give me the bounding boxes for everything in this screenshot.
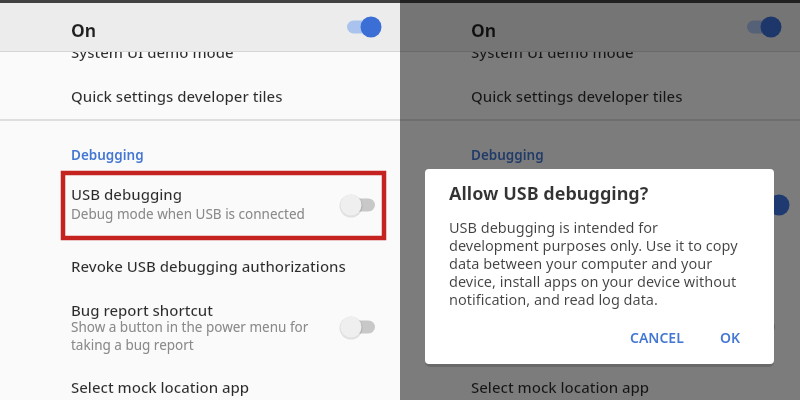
button[interactable]: Select mock location app	[0, 368, 400, 400]
staticText: Revoke USB debugging authorizations	[71, 256, 346, 276]
button[interactable]: Revoke USB debugging authorizations	[0, 246, 400, 286]
staticText: Quick settings developer tiles	[71, 86, 283, 106]
staticText: System UI demo mode	[471, 42, 634, 62]
button[interactable]	[740, 315, 776, 339]
button[interactable]: Bug report shortcut	[400, 290, 800, 360]
button[interactable]	[740, 193, 776, 217]
button[interactable]	[340, 315, 376, 339]
staticText: Show a button in the power menu for taki…	[71, 318, 309, 354]
staticText: Debugging	[471, 146, 544, 164]
button[interactable]: USB debugging	[400, 168, 800, 242]
button[interactable]: OK	[713, 324, 753, 350]
button[interactable]	[340, 193, 376, 217]
staticText: CANCEL	[630, 328, 684, 347]
staticText: Bug report shortcut	[71, 300, 213, 320]
button[interactable]: Select mock location app	[400, 368, 800, 400]
staticText: Quick settings developer tiles	[471, 86, 683, 106]
staticText: USB debugging	[471, 184, 583, 204]
staticText: Debug mode when USB is connected	[71, 205, 305, 223]
staticText: On	[71, 18, 97, 42]
staticText: USB debugging	[71, 184, 183, 204]
staticText: OK	[720, 328, 741, 347]
button[interactable]	[346, 15, 382, 39]
staticText: Select mock location app	[71, 377, 250, 397]
staticText: Revoke USB debugging authorizations	[471, 256, 746, 276]
staticText: System UI demo mode	[71, 42, 234, 62]
staticText: Bug report shortcut	[471, 300, 613, 320]
staticText: On	[471, 18, 497, 42]
staticText: USB debugging is intended for developmen…	[449, 217, 738, 309]
button[interactable]: USB debugging	[0, 168, 400, 242]
staticText: Select mock location app	[471, 377, 650, 397]
button[interactable]: Quick settings developer tiles	[0, 74, 400, 114]
button[interactable]: Bug report shortcut	[0, 290, 400, 360]
staticText: Debug mode when USB is connected	[471, 205, 705, 223]
button[interactable]: Quick settings developer tiles	[400, 74, 800, 114]
button[interactable]: On	[400, 3, 800, 52]
button[interactable]	[746, 15, 782, 39]
button[interactable]: Revoke USB debugging authorizations	[400, 246, 800, 286]
staticText: Debugging	[71, 146, 144, 164]
button[interactable]: On	[0, 3, 400, 52]
button[interactable]: CANCEL	[623, 324, 695, 350]
staticText: Show a button in the power menu for taki…	[471, 318, 709, 354]
staticText: Allow USB debugging?	[449, 181, 649, 206]
